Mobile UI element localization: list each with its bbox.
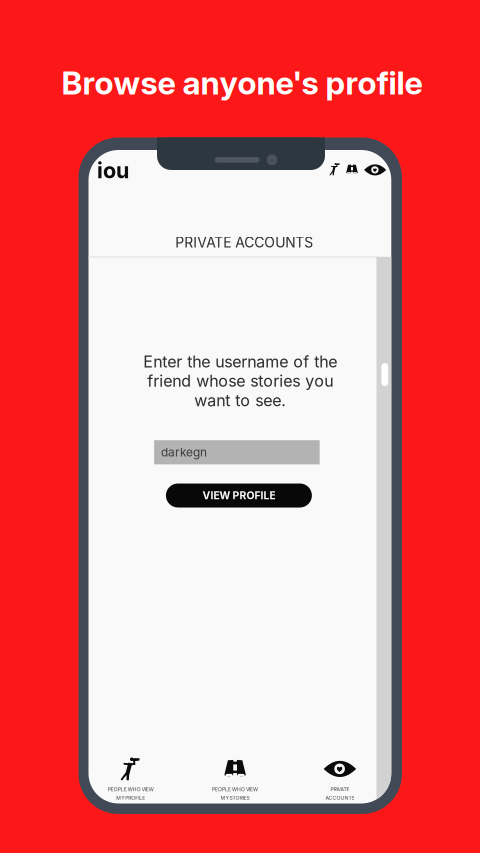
staticText: MY PROFILE xyxy=(116,795,145,801)
staticText: Browse anyone's profile xyxy=(61,64,422,102)
staticText: VIEW PROFILE xyxy=(202,489,275,502)
button[interactable]: PRIVATE xyxy=(292,757,388,801)
staticText: iou xyxy=(97,157,129,183)
button[interactable]: People who view my stories xyxy=(342,158,362,180)
staticText: ACCOUNTS xyxy=(325,795,354,801)
staticText: PEOPLE WHO VIEW xyxy=(108,786,154,792)
button[interactable]: People who view my profile xyxy=(324,158,346,180)
button[interactable]: PEOPLE WHO VIEW xyxy=(83,757,179,801)
staticText: Enter the username of the friend whose s… xyxy=(143,352,337,410)
button[interactable]: PEOPLE WHO VIEW xyxy=(187,757,283,801)
staticText: MY STORIES xyxy=(221,795,250,801)
staticText: PRIVATE xyxy=(330,786,349,792)
staticText: PEOPLE WHO VIEW xyxy=(212,786,258,792)
button[interactable]: Private accounts xyxy=(363,159,387,181)
button[interactable]: VIEW PROFILE xyxy=(166,483,312,507)
staticText: darkegn xyxy=(161,445,207,459)
staticText: PRIVATE ACCOUNTS xyxy=(175,234,313,251)
